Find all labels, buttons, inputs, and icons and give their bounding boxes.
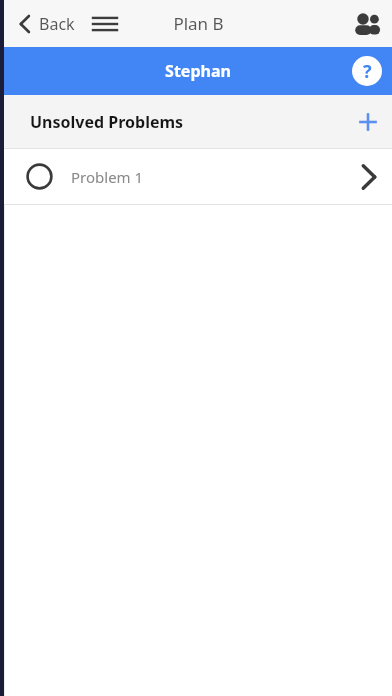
staticText: Back — [39, 13, 75, 35]
staticText: Stephan — [165, 60, 231, 82]
button[interactable]: Add problem — [344, 95, 392, 148]
button[interactable]: Menu — [88, 0, 122, 47]
button[interactable]: Stephan — [4, 47, 392, 95]
staticText: ? — [363, 59, 372, 84]
staticText: Plan B — [173, 12, 224, 35]
button[interactable]: Help — [352, 56, 382, 86]
staticText: Unsolved Problems — [30, 111, 184, 133]
button[interactable]: Back — [4, 0, 83, 47]
button[interactable]: Problem 1 — [4, 149, 392, 204]
button[interactable]: Contacts — [340, 0, 392, 47]
staticText: Problem 1 — [71, 167, 144, 187]
